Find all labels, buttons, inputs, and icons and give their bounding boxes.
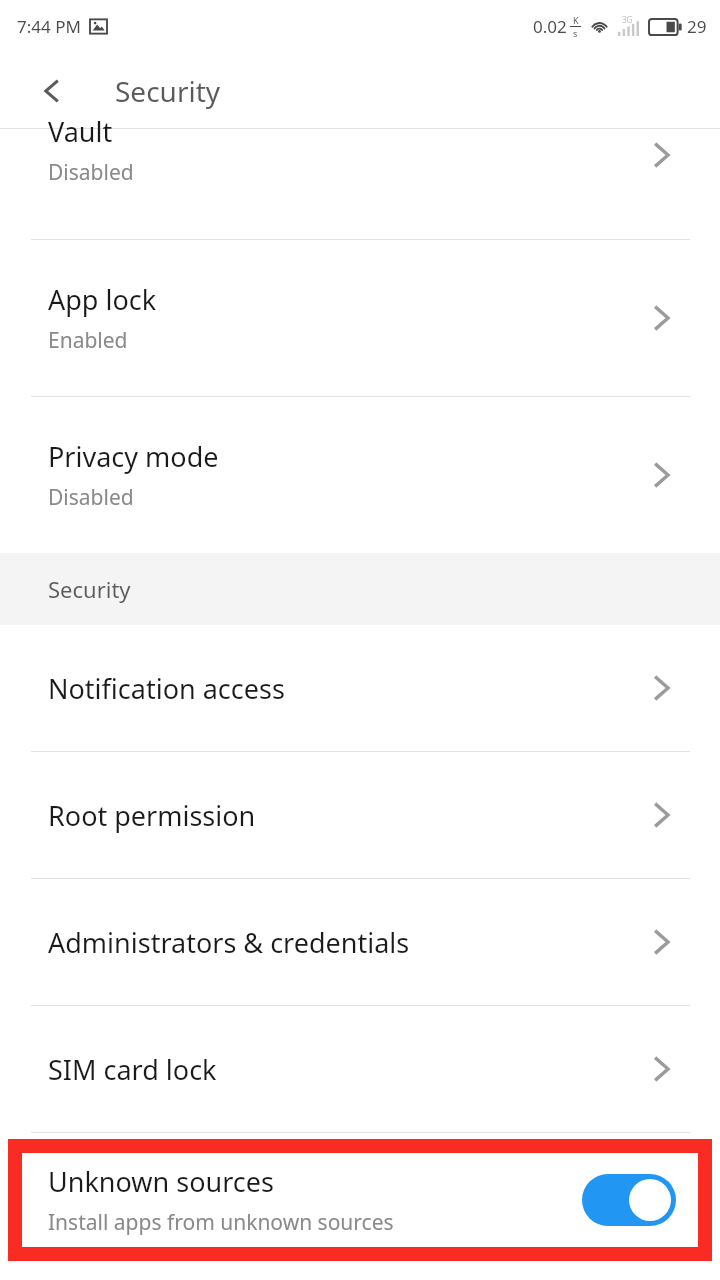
button[interactable]: Vault [0,129,720,239]
staticText: Privacy mode [48,438,219,475]
button[interactable]: Back [28,67,76,115]
staticText: 7:44 PM [17,15,81,38]
staticText: App lock [48,281,157,318]
staticText: 0.02 [533,15,567,38]
button[interactable]: App lock [0,240,720,396]
staticText: Unknown sources [48,1163,274,1200]
staticText: Install apps from unknown sources [48,1208,394,1237]
staticText: 29 [687,15,707,38]
button[interactable]: Privacy mode [0,397,720,553]
staticText: Security [48,574,131,604]
staticText: Disabled [48,483,134,512]
staticText: Root permission [48,797,256,834]
staticText: Security [115,72,221,110]
staticText: SIM card lock [48,1051,217,1088]
button[interactable]: Root permission [0,752,720,878]
staticText: K [573,14,579,26]
staticText: Disabled [48,158,134,187]
staticText: s [573,27,578,39]
button[interactable]: Notification access [0,625,720,751]
button[interactable]: Unknown sources [22,1153,698,1247]
staticText: Enabled [48,326,128,355]
button[interactable]: Administrators & credentials [0,879,720,1005]
staticText: 3G [622,14,633,25]
staticText: Administrators & credentials [48,924,410,961]
button[interactable]: Unknown sources toggle [582,1174,676,1226]
staticText: Notification access [48,670,285,707]
staticText: Vault [48,113,113,150]
button[interactable]: SIM card lock [0,1006,720,1132]
